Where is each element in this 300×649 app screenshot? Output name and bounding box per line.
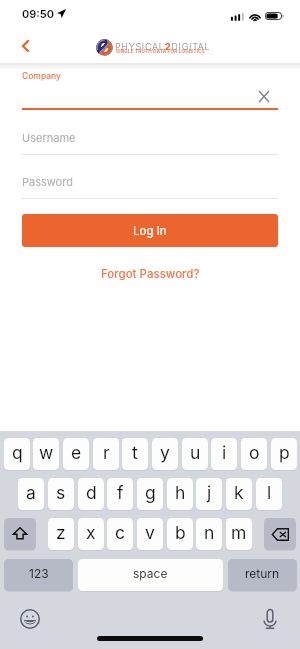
- staticText: f: [117, 482, 124, 503]
- button[interactable]: b: [167, 518, 193, 550]
- staticText: n: [204, 522, 215, 543]
- staticText: 09:50: [22, 7, 54, 20]
- staticText: b: [175, 522, 186, 543]
- staticText: o: [249, 442, 260, 463]
- staticText: j: [207, 482, 212, 503]
- button[interactable]: p: [271, 438, 297, 470]
- staticText: Log In: [133, 224, 167, 238]
- button[interactable]: d: [78, 478, 104, 510]
- staticText: PHYSICAL2DIGITAL: [115, 41, 211, 52]
- staticText: k: [234, 482, 244, 503]
- staticText: return: [245, 566, 280, 581]
- button[interactable]: s: [48, 478, 74, 510]
- button[interactable]: h: [167, 478, 193, 510]
- staticText: q: [12, 442, 23, 463]
- button[interactable]: Clear: [251, 85, 277, 107]
- button[interactable]: n: [196, 518, 222, 550]
- button[interactable]: m: [226, 518, 252, 550]
- button[interactable]: v: [137, 518, 163, 550]
- staticText: Company: [22, 71, 61, 81]
- staticText: a: [26, 482, 36, 503]
- button[interactable]: Forgot Password?: [22, 264, 278, 284]
- staticText: m: [231, 522, 247, 543]
- staticText: z: [56, 522, 66, 543]
- staticText: Username: [22, 131, 76, 144]
- button[interactable]: k: [226, 478, 252, 510]
- button[interactable]: e: [63, 438, 89, 470]
- staticText: g: [145, 482, 156, 503]
- button[interactable]: Emoji: [14, 603, 46, 634]
- button[interactable]: g: [137, 478, 163, 510]
- staticText: w: [39, 442, 54, 463]
- button[interactable]: Backspace: [264, 518, 296, 550]
- button[interactable]: t: [122, 438, 148, 470]
- button[interactable]: o: [241, 438, 267, 470]
- button[interactable]: q: [4, 438, 30, 470]
- button[interactable]: Shift: [4, 518, 36, 550]
- staticText: y: [160, 442, 170, 463]
- button[interactable]: w: [33, 438, 59, 470]
- staticText: x: [86, 522, 96, 543]
- button[interactable]: f: [107, 478, 133, 510]
- staticText: s: [56, 482, 66, 503]
- staticText: h: [175, 482, 186, 503]
- staticText: space: [133, 566, 168, 581]
- button[interactable]: z: [48, 518, 74, 550]
- button[interactable]: y: [152, 438, 178, 470]
- button[interactable]: 123: [4, 559, 73, 591]
- button[interactable]: r: [93, 438, 119, 470]
- button[interactable]: Back: [12, 33, 38, 59]
- button[interactable]: a: [18, 478, 44, 510]
- staticText: t: [132, 442, 138, 463]
- staticText: SINGLE TRUTH DATA FOR LOGISTICS: [116, 49, 205, 55]
- staticText: u: [190, 442, 201, 463]
- button[interactable]: l: [256, 478, 282, 510]
- button[interactable]: space: [78, 559, 223, 591]
- button[interactable]: Dictate: [254, 603, 286, 634]
- staticText: e: [71, 442, 82, 463]
- staticText: d: [86, 482, 97, 503]
- staticText: l: [267, 482, 272, 503]
- button[interactable]: i: [211, 438, 237, 470]
- button[interactable]: Log In: [22, 214, 278, 247]
- staticText: c: [115, 522, 125, 543]
- staticText: Password: [22, 175, 73, 188]
- button[interactable]: c: [107, 518, 133, 550]
- staticText: r: [103, 442, 110, 463]
- button[interactable]: x: [78, 518, 104, 550]
- staticText: p: [279, 442, 290, 463]
- button[interactable]: return: [228, 559, 297, 591]
- button[interactable]: j: [196, 478, 222, 510]
- staticText: 123: [29, 566, 49, 581]
- staticText: v: [145, 522, 155, 543]
- staticText: i: [222, 442, 227, 463]
- button[interactable]: u: [182, 438, 208, 470]
- staticText: Forgot Password?: [101, 267, 200, 281]
